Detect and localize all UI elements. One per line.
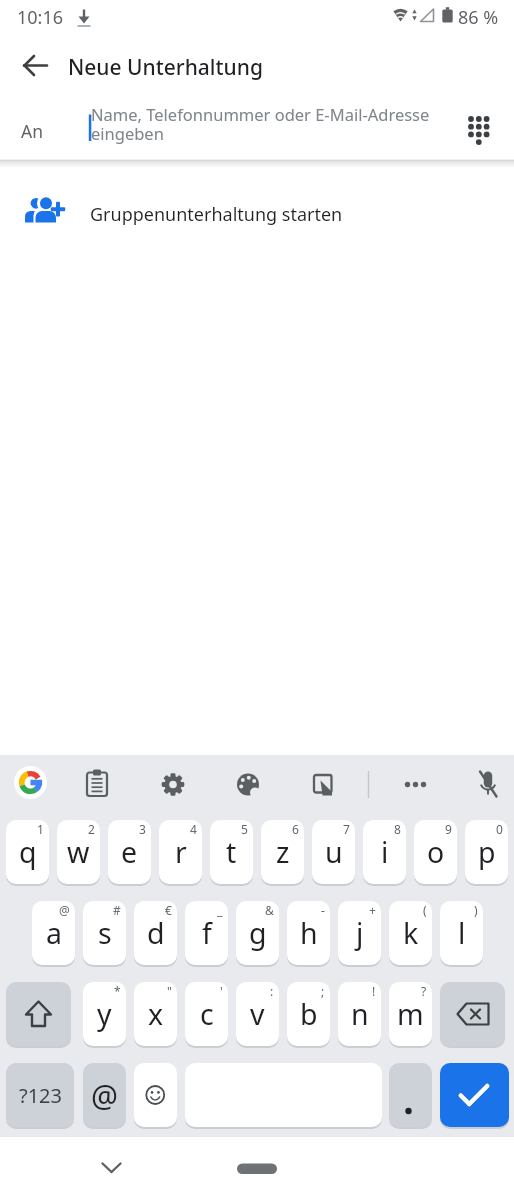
button[interactable]: y	[83, 982, 126, 1046]
staticText: 6	[292, 821, 299, 837]
staticText: An	[21, 119, 43, 143]
button[interactable]: g	[236, 901, 279, 965]
button[interactable]	[73, 761, 121, 809]
button[interactable]: ?123	[6, 1063, 74, 1127]
staticText: j	[356, 914, 364, 953]
button[interactable]	[7, 761, 55, 809]
staticText: @	[59, 902, 70, 918]
staticText: Name, Telefonnummer oder E-Mail-Adresse …	[91, 103, 430, 145]
staticText: #	[113, 902, 121, 918]
button[interactable]	[0, 178, 514, 242]
staticText: c	[200, 995, 214, 1034]
staticText: ;	[321, 983, 325, 999]
staticText: p	[478, 833, 496, 872]
staticText: l	[458, 914, 466, 953]
staticText: -	[321, 902, 325, 918]
button[interactable]	[90, 1151, 134, 1185]
staticText: )	[474, 902, 478, 918]
button[interactable]	[0, 96, 440, 160]
staticText: ?123	[19, 1082, 62, 1109]
staticText: a	[46, 914, 62, 953]
button[interactable]: a	[32, 901, 75, 965]
button[interactable]: n	[338, 982, 381, 1046]
button[interactable]	[464, 761, 512, 809]
staticText: +	[369, 902, 376, 918]
staticText: !	[372, 983, 376, 999]
button[interactable]: l	[440, 901, 483, 965]
staticText: x	[148, 995, 164, 1034]
button[interactable]	[11, 42, 59, 90]
button[interactable]	[389, 1063, 432, 1127]
button[interactable]: x	[134, 982, 177, 1046]
button[interactable]: b	[287, 982, 330, 1046]
staticText: t	[226, 833, 237, 872]
staticText: 4	[190, 821, 197, 837]
button[interactable]	[440, 982, 505, 1046]
staticText: v	[250, 995, 265, 1034]
staticText: 8	[394, 821, 401, 837]
button[interactable]	[6, 982, 71, 1046]
staticText: d	[147, 914, 165, 953]
button[interactable]: r	[159, 820, 202, 884]
staticText: e	[121, 833, 138, 872]
staticText: b	[300, 995, 318, 1034]
staticText: '	[220, 983, 223, 999]
button[interactable]: i	[363, 820, 406, 884]
button[interactable]: q	[6, 820, 49, 884]
button[interactable]: f	[185, 901, 228, 965]
button[interactable]: v	[236, 982, 279, 1046]
staticText: 3	[139, 821, 146, 837]
staticText: :	[270, 983, 274, 999]
button[interactable]: o	[414, 820, 457, 884]
staticText: u	[325, 833, 343, 872]
staticText: k	[403, 914, 419, 953]
staticText: q	[19, 833, 37, 872]
staticText: 1	[37, 821, 44, 837]
staticText: r	[175, 833, 187, 872]
staticText: _	[217, 902, 223, 918]
button[interactable]: p	[465, 820, 508, 884]
button[interactable]	[134, 1063, 177, 1127]
button[interactable]	[455, 102, 503, 150]
staticText: o	[427, 833, 445, 872]
button[interactable]: e	[108, 820, 151, 884]
button[interactable]	[298, 761, 346, 809]
staticText: y	[97, 995, 112, 1034]
staticText: g	[249, 914, 267, 953]
staticText: f	[202, 914, 212, 953]
button[interactable]: m	[389, 982, 432, 1046]
staticText: i	[381, 833, 389, 872]
button[interactable]: z	[261, 820, 304, 884]
button[interactable]: d	[134, 901, 177, 965]
button[interactable]	[227, 1153, 287, 1183]
staticText: 7	[343, 821, 350, 837]
button[interactable]: w	[57, 820, 100, 884]
button[interactable]	[224, 761, 272, 809]
staticText: Neue Unterhaltung	[68, 53, 263, 82]
button[interactable]: s	[83, 901, 126, 965]
staticText: (	[423, 902, 427, 918]
staticText: h	[300, 914, 318, 953]
button[interactable]	[149, 761, 197, 809]
button[interactable]: j	[338, 901, 381, 965]
button[interactable]: h	[287, 901, 330, 965]
staticText: Gruppenunterhaltung starten	[90, 202, 343, 227]
staticText: w	[67, 833, 90, 872]
staticText: ?	[421, 983, 427, 999]
button[interactable]: u	[312, 820, 355, 884]
staticText: n	[351, 995, 369, 1034]
button[interactable]: c	[185, 982, 228, 1046]
button[interactable]	[391, 761, 439, 809]
staticText: €	[165, 902, 172, 918]
staticText: z	[276, 833, 290, 872]
staticText: "	[167, 983, 172, 999]
button[interactable]	[440, 1063, 509, 1127]
staticText: *	[114, 983, 121, 999]
staticText: &	[265, 902, 274, 918]
button[interactable]: @	[83, 1063, 126, 1127]
button[interactable]: t	[210, 820, 253, 884]
staticText: m	[397, 995, 424, 1034]
button[interactable]: k	[389, 901, 432, 965]
staticText: 5	[241, 821, 248, 837]
